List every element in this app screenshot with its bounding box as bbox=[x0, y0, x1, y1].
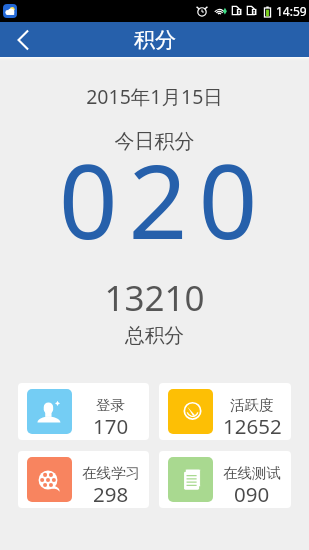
staticText: 活跃度 bbox=[230, 396, 274, 414]
button[interactable]: Back bbox=[0, 22, 46, 57]
staticText: 13210 bbox=[0, 274, 309, 322]
button[interactable]: 在线学习 bbox=[18, 451, 149, 508]
button[interactable]: 登录 bbox=[18, 383, 149, 440]
staticText: 170 bbox=[93, 412, 129, 440]
staticText: 登录 bbox=[96, 396, 125, 414]
button[interactable]: 在线测试 bbox=[159, 451, 291, 508]
button[interactable]: 活跃度 bbox=[159, 383, 291, 440]
staticText: 今日积分 bbox=[0, 129, 309, 154]
staticText: 14:59 bbox=[276, 3, 307, 19]
staticText: 在线测试 bbox=[223, 464, 281, 482]
staticText: 12652 bbox=[223, 412, 282, 440]
staticText: 298 bbox=[93, 480, 129, 508]
staticText: 总积分 bbox=[0, 323, 309, 348]
staticText: 020 bbox=[9, 129, 309, 269]
staticText: 在线学习 bbox=[82, 464, 140, 482]
staticText: 090 bbox=[234, 480, 270, 508]
staticText: 积分 bbox=[134, 27, 176, 53]
staticText: 2015年1月15日 bbox=[0, 83, 309, 110]
